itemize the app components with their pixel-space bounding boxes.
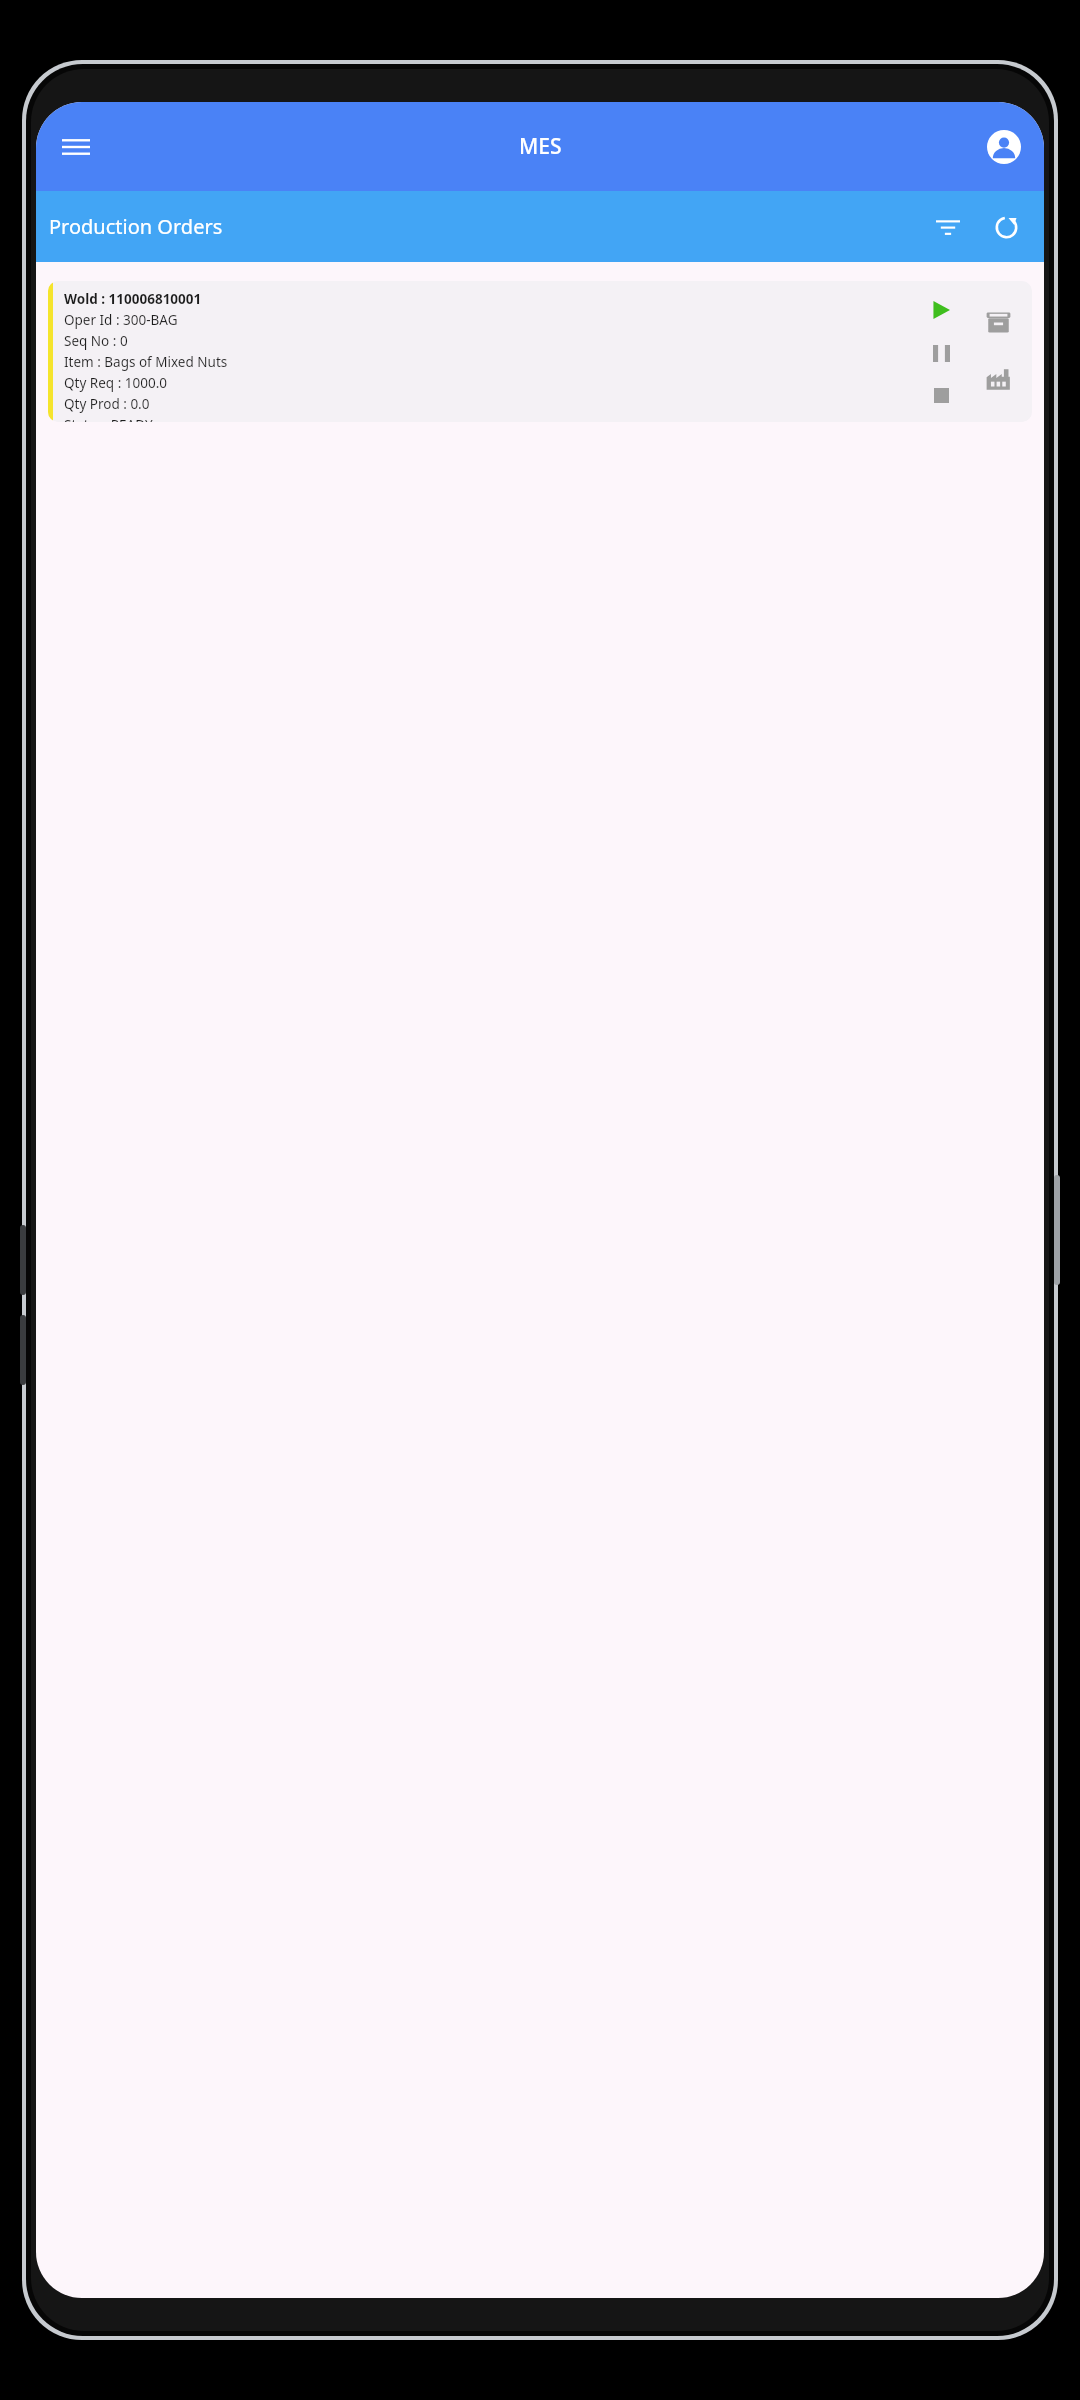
staticText: Oper Id : 300-BAG <box>64 311 178 329</box>
button[interactable]: Start <box>924 293 958 327</box>
button[interactable]: Work center <box>977 358 1019 400</box>
button[interactable]: Pause <box>924 336 958 370</box>
staticText: MES <box>519 132 562 161</box>
button[interactable]: Stop <box>924 378 958 412</box>
staticText: Production Orders <box>49 213 223 240</box>
button[interactable]: Open navigation menu <box>50 121 102 173</box>
button[interactable]: Wold : 110006810001 <box>48 281 1032 422</box>
button[interactable]: Refresh <box>982 203 1030 251</box>
staticText: Seq No : 0 <box>64 332 128 350</box>
button[interactable]: Inventory <box>977 301 1019 343</box>
button[interactable]: Filter <box>924 203 972 251</box>
button[interactable]: Account <box>978 121 1030 173</box>
staticText: Qty Req : 1000.0 <box>64 374 167 392</box>
staticText: Item : Bags of Mixed Nuts <box>64 353 228 371</box>
staticText: Wold : 110006810001 <box>64 290 202 308</box>
staticText: Qty Prod : 0.0 <box>64 395 150 413</box>
staticText: Status: READY <box>64 416 153 422</box>
